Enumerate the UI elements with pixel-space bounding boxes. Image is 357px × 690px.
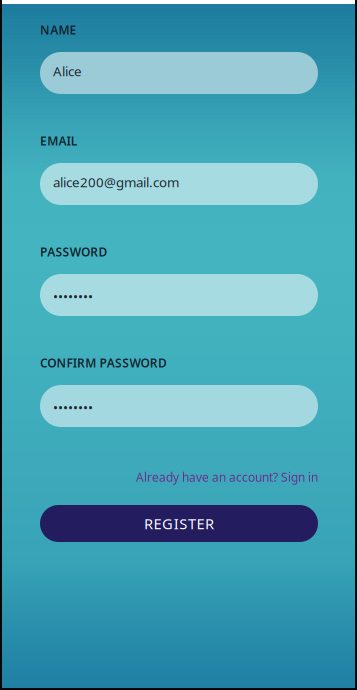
staticText: PASSWORD xyxy=(40,244,107,260)
button[interactable]: Already have an account? Sign in xyxy=(40,469,318,485)
staticText: alice200@gmail.com xyxy=(53,173,179,191)
staticText: EMAIL xyxy=(40,133,78,149)
button[interactable]: •••••••• xyxy=(40,274,318,316)
staticText: Alice xyxy=(53,62,82,80)
staticText: Already have an account? Sign in xyxy=(136,469,318,485)
button[interactable]: alice200@gmail.com xyxy=(40,163,318,205)
staticText: REGISTER xyxy=(144,514,214,533)
button[interactable]: Alice xyxy=(40,52,318,94)
button[interactable]: REGISTER xyxy=(40,505,318,542)
staticText: •••••••• xyxy=(53,287,93,305)
staticText: •••••••• xyxy=(53,398,93,416)
staticText: NAME xyxy=(40,22,77,38)
button[interactable]: •••••••• xyxy=(40,385,318,427)
staticText: CONFIRM PASSWORD xyxy=(40,355,167,371)
